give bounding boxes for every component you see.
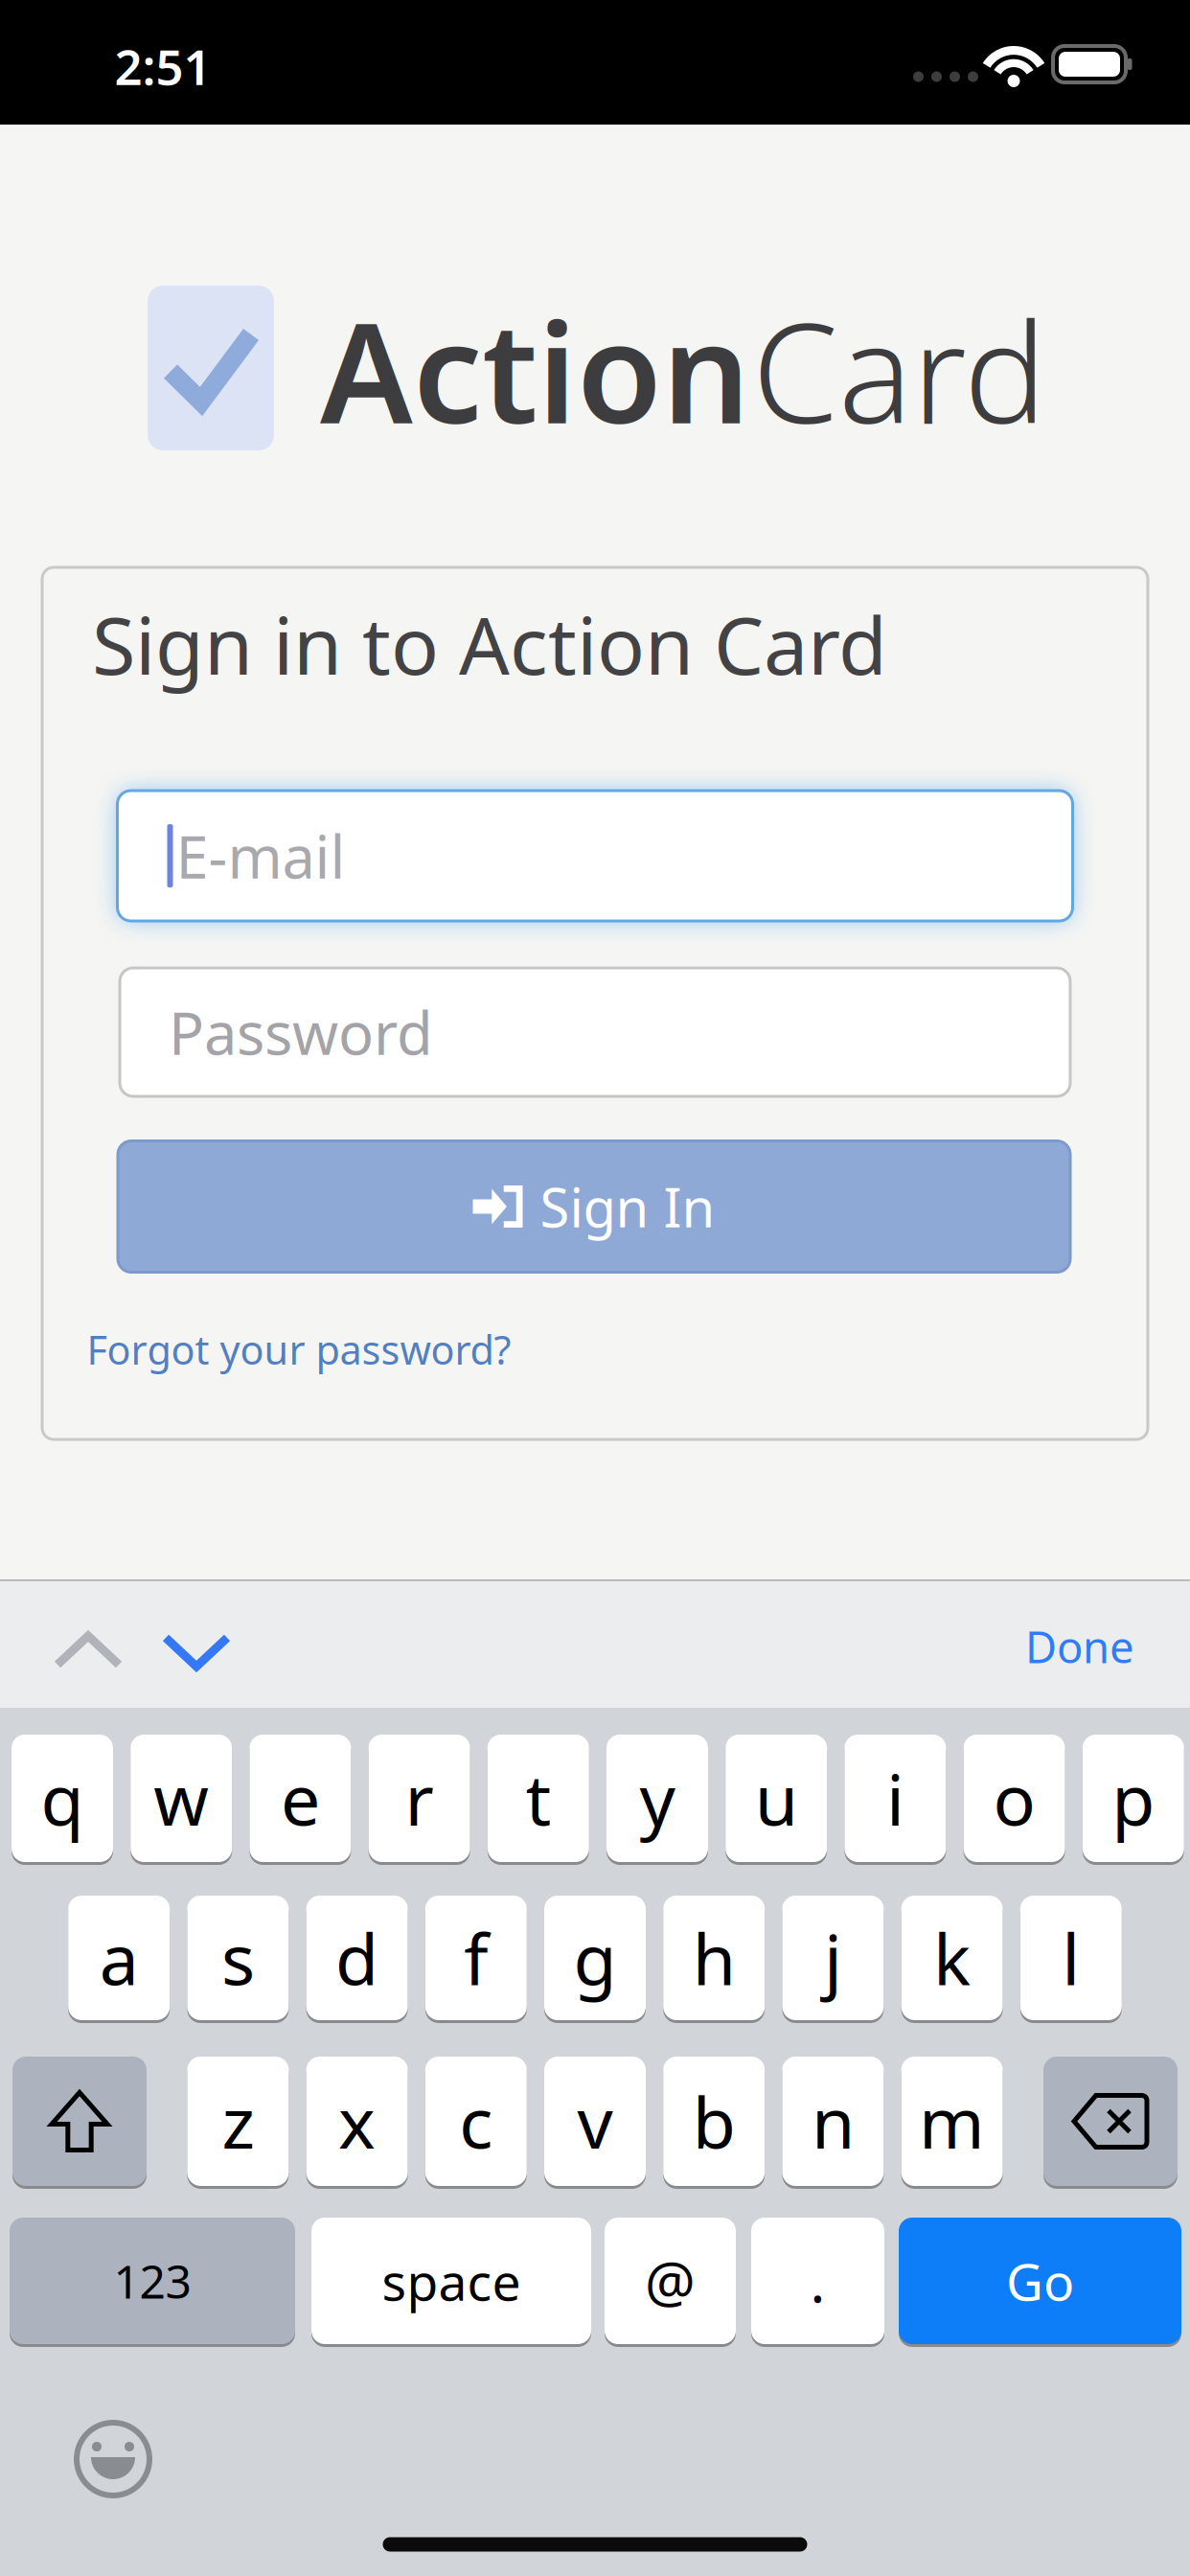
button[interactable]: Emoji [67, 2413, 159, 2505]
staticText: a [99, 1911, 139, 2005]
button[interactable]: . [751, 2216, 884, 2346]
button[interactable]: @ [605, 2216, 736, 2346]
button[interactable]: d [306, 1894, 408, 2022]
staticText: E-mail [176, 817, 345, 895]
staticText: z [222, 2075, 254, 2168]
staticText: l [1062, 1911, 1080, 2005]
staticText: j [824, 1911, 842, 2005]
button[interactable]: Forgot your password? [87, 1323, 511, 1376]
button[interactable]: e [249, 1733, 351, 1863]
staticText: @ [645, 2243, 696, 2318]
button[interactable]: Sign In [118, 1141, 1070, 1272]
button[interactable]: y [606, 1733, 708, 1863]
button[interactable]: h [663, 1894, 765, 2022]
button[interactable]: z [187, 2055, 289, 2187]
staticText: Go [1006, 2247, 1074, 2315]
button[interactable]: f [425, 1894, 527, 2022]
staticText: Sign in to Action Card [92, 591, 887, 697]
button[interactable]: g [544, 1894, 646, 2022]
button[interactable]: u [725, 1733, 827, 1863]
staticText: f [464, 1911, 488, 2005]
button[interactable]: m [901, 2055, 1003, 2187]
staticText: space [382, 2247, 521, 2315]
button[interactable]: k [901, 1894, 1003, 2022]
staticText: 123 [114, 2250, 191, 2311]
staticText: m [919, 2075, 985, 2168]
staticText: c [459, 2075, 493, 2168]
staticText: o [993, 1752, 1035, 1845]
staticText: Action [320, 278, 750, 462]
button[interactable]: v [544, 2055, 646, 2187]
staticText: e [281, 1752, 320, 1845]
staticText: r [405, 1752, 434, 1845]
button[interactable]: j [782, 1894, 884, 2022]
button[interactable]: Delete [1043, 2055, 1178, 2187]
staticText: v [577, 2075, 613, 2168]
button[interactable]: l [1020, 1894, 1122, 2022]
staticText: Forgot your password? [87, 1323, 511, 1376]
button[interactable]: Done [1025, 1618, 1134, 1675]
button[interactable]: Previous field [40, 1619, 136, 1682]
button[interactable]: n [782, 2055, 884, 2187]
button[interactable]: Shift [12, 2055, 147, 2187]
button[interactable]: s [187, 1894, 289, 2022]
button[interactable]: Go [899, 2216, 1181, 2346]
staticText: Sign In [540, 1171, 715, 1242]
button[interactable]: w [130, 1733, 232, 1863]
staticText: q [41, 1752, 84, 1845]
staticText: t [526, 1752, 551, 1845]
staticText: n [811, 2075, 855, 2168]
staticText: i [886, 1752, 904, 1845]
staticText: w [153, 1752, 209, 1845]
button[interactable]: p [1082, 1733, 1184, 1863]
button[interactable]: o [963, 1733, 1065, 1863]
button[interactable]: E-mail [117, 791, 1073, 921]
button[interactable]: space [311, 2216, 591, 2346]
staticText: p [1112, 1752, 1155, 1845]
button[interactable]: x [306, 2055, 408, 2187]
staticText: k [933, 1911, 971, 2005]
button[interactable]: t [487, 1733, 589, 1863]
staticText: Password [169, 993, 433, 1071]
button[interactable]: b [663, 2055, 765, 2187]
staticText: y [640, 1752, 675, 1845]
button[interactable]: c [425, 2055, 527, 2187]
staticText: b [692, 2075, 736, 2168]
staticText: Done [1025, 1618, 1134, 1675]
button[interactable]: Next field [149, 1621, 244, 1684]
button[interactable]: i [844, 1733, 946, 1863]
staticText: h [692, 1911, 736, 2005]
staticText: g [573, 1911, 617, 2005]
staticText: Card [752, 278, 1046, 462]
button[interactable]: Numbers [10, 2216, 295, 2346]
staticText: s [221, 1911, 255, 2005]
staticText: 2:51 [114, 34, 211, 98]
staticText: u [755, 1752, 798, 1845]
staticText: x [338, 2075, 376, 2168]
staticText: d [335, 1911, 379, 2005]
staticText: . [810, 2243, 825, 2318]
button[interactable]: Password [120, 968, 1070, 1096]
button[interactable]: r [368, 1733, 470, 1863]
button[interactable]: q [11, 1733, 113, 1863]
button[interactable]: a [68, 1894, 170, 2022]
